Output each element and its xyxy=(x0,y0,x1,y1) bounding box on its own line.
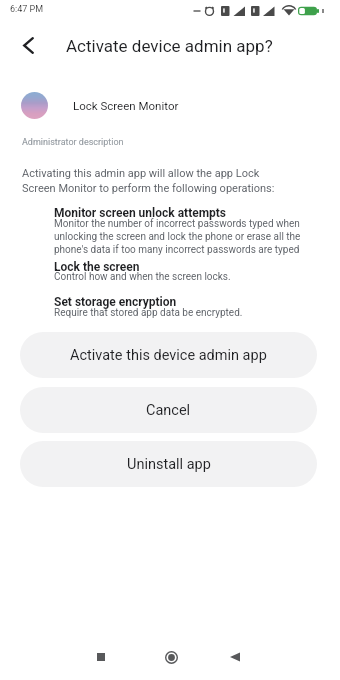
button[interactable]: Back xyxy=(221,643,249,671)
button[interactable]: Uninstall app xyxy=(20,441,317,487)
staticText: Administrator description xyxy=(22,137,124,148)
staticText: Activate device admin app? xyxy=(66,36,273,56)
staticText: Monitor the number of incorrect password… xyxy=(54,218,301,255)
staticText: Activate this device admin app xyxy=(70,347,267,364)
staticText: Monitor screen unlock attempts xyxy=(54,206,227,220)
button[interactable]: Home xyxy=(157,643,185,671)
staticText: Lock Screen Monitor xyxy=(73,99,179,112)
staticText: Set storage encryption xyxy=(54,295,177,309)
staticText: Lock the screen xyxy=(54,260,140,274)
staticText: Cancel xyxy=(146,402,191,419)
staticText: Require that stored app data be encrypte… xyxy=(54,307,243,319)
button[interactable]: Recent apps xyxy=(87,643,115,671)
staticText: Control how and when the screen locks. xyxy=(54,271,231,283)
staticText: Uninstall app xyxy=(127,456,211,473)
button[interactable]: Cancel xyxy=(20,387,317,433)
staticText: 6:47 PM xyxy=(10,4,44,15)
button[interactable]: Activate this device admin app xyxy=(20,332,317,378)
staticText: Activating this admin app will allow the… xyxy=(22,167,275,195)
button[interactable]: Back xyxy=(13,30,43,60)
